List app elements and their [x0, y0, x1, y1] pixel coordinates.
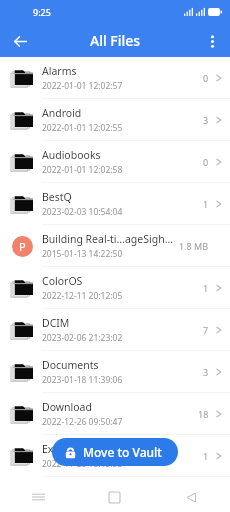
button[interactable]: Alarms [0, 57, 230, 98]
button[interactable]: Recents [0, 482, 76, 512]
staticText: 18 [198, 408, 209, 420]
button[interactable]: Back [153, 482, 230, 512]
button[interactable]: Back [6, 27, 34, 55]
staticText: BestQ [42, 190, 72, 204]
staticText: All Files [90, 31, 141, 50]
staticText: Android [42, 106, 82, 120]
button[interactable]: BestQ [0, 183, 230, 224]
staticText: 1 [203, 198, 209, 210]
staticText: 0 [203, 156, 209, 168]
button[interactable]: Audiobooks [0, 141, 230, 182]
staticText: 2022-12-26 09:50:47 [42, 416, 123, 428]
staticText: 2022-01-01 12:02:57 [42, 80, 123, 92]
staticText: ExtractedApks [42, 442, 113, 456]
staticText: 1 [203, 282, 209, 294]
staticText: Audiobooks [42, 148, 101, 162]
staticText: 2022-12-11 20:12:05 [42, 290, 123, 302]
staticText: 1 [203, 450, 209, 462]
staticText: 1.8 MB [179, 240, 209, 252]
staticText: 2015-01-13 14:22:50 [42, 248, 123, 260]
staticText: 3 [203, 366, 209, 378]
button[interactable]: DCIM [0, 309, 230, 350]
staticText: 0 [203, 72, 209, 84]
button[interactable]: Home [76, 482, 153, 512]
button[interactable]: More options [199, 28, 225, 54]
staticText: DCIM [42, 316, 70, 330]
staticText: 3 [203, 114, 209, 126]
staticText: 2023-02-06 21:23:02 [42, 332, 123, 344]
button[interactable]: P [0, 225, 230, 266]
staticText: Move to Vault [83, 444, 162, 460]
staticText: ColorOS [42, 274, 83, 288]
staticText: 2022-01-01 12:02:58 [42, 164, 123, 176]
button[interactable]: Move to Vault [52, 438, 178, 466]
staticText: 2023-01-18 11:39:06 [42, 374, 123, 386]
button[interactable]: ExtractedApks [0, 435, 230, 476]
staticText: Download [42, 400, 92, 414]
staticText: FRA... [42, 481, 70, 495]
staticText: 2022-11-28 15:43:53 [42, 458, 123, 470]
button[interactable]: Download [0, 393, 230, 434]
button[interactable]: ColorOS [0, 267, 230, 308]
button[interactable]: FRA... [0, 477, 230, 512]
staticText: 2023-02-03 10:54:04 [42, 206, 123, 218]
staticText: P [19, 239, 26, 254]
staticText: Alarms [42, 64, 77, 78]
staticText: 2023-02-03 12:22:36 [42, 497, 123, 509]
staticText: 2022-01-01 12:02:55 [42, 122, 123, 134]
button[interactable]: Android [0, 99, 230, 140]
staticText: Building Real-ti...ageSight-2.pptx [42, 232, 175, 246]
staticText: 7 [203, 324, 209, 336]
button[interactable]: Documents [0, 351, 230, 392]
staticText: Documents [42, 358, 99, 372]
staticText: 9:25 [33, 6, 51, 18]
staticText: 18.5 KB [177, 489, 209, 501]
